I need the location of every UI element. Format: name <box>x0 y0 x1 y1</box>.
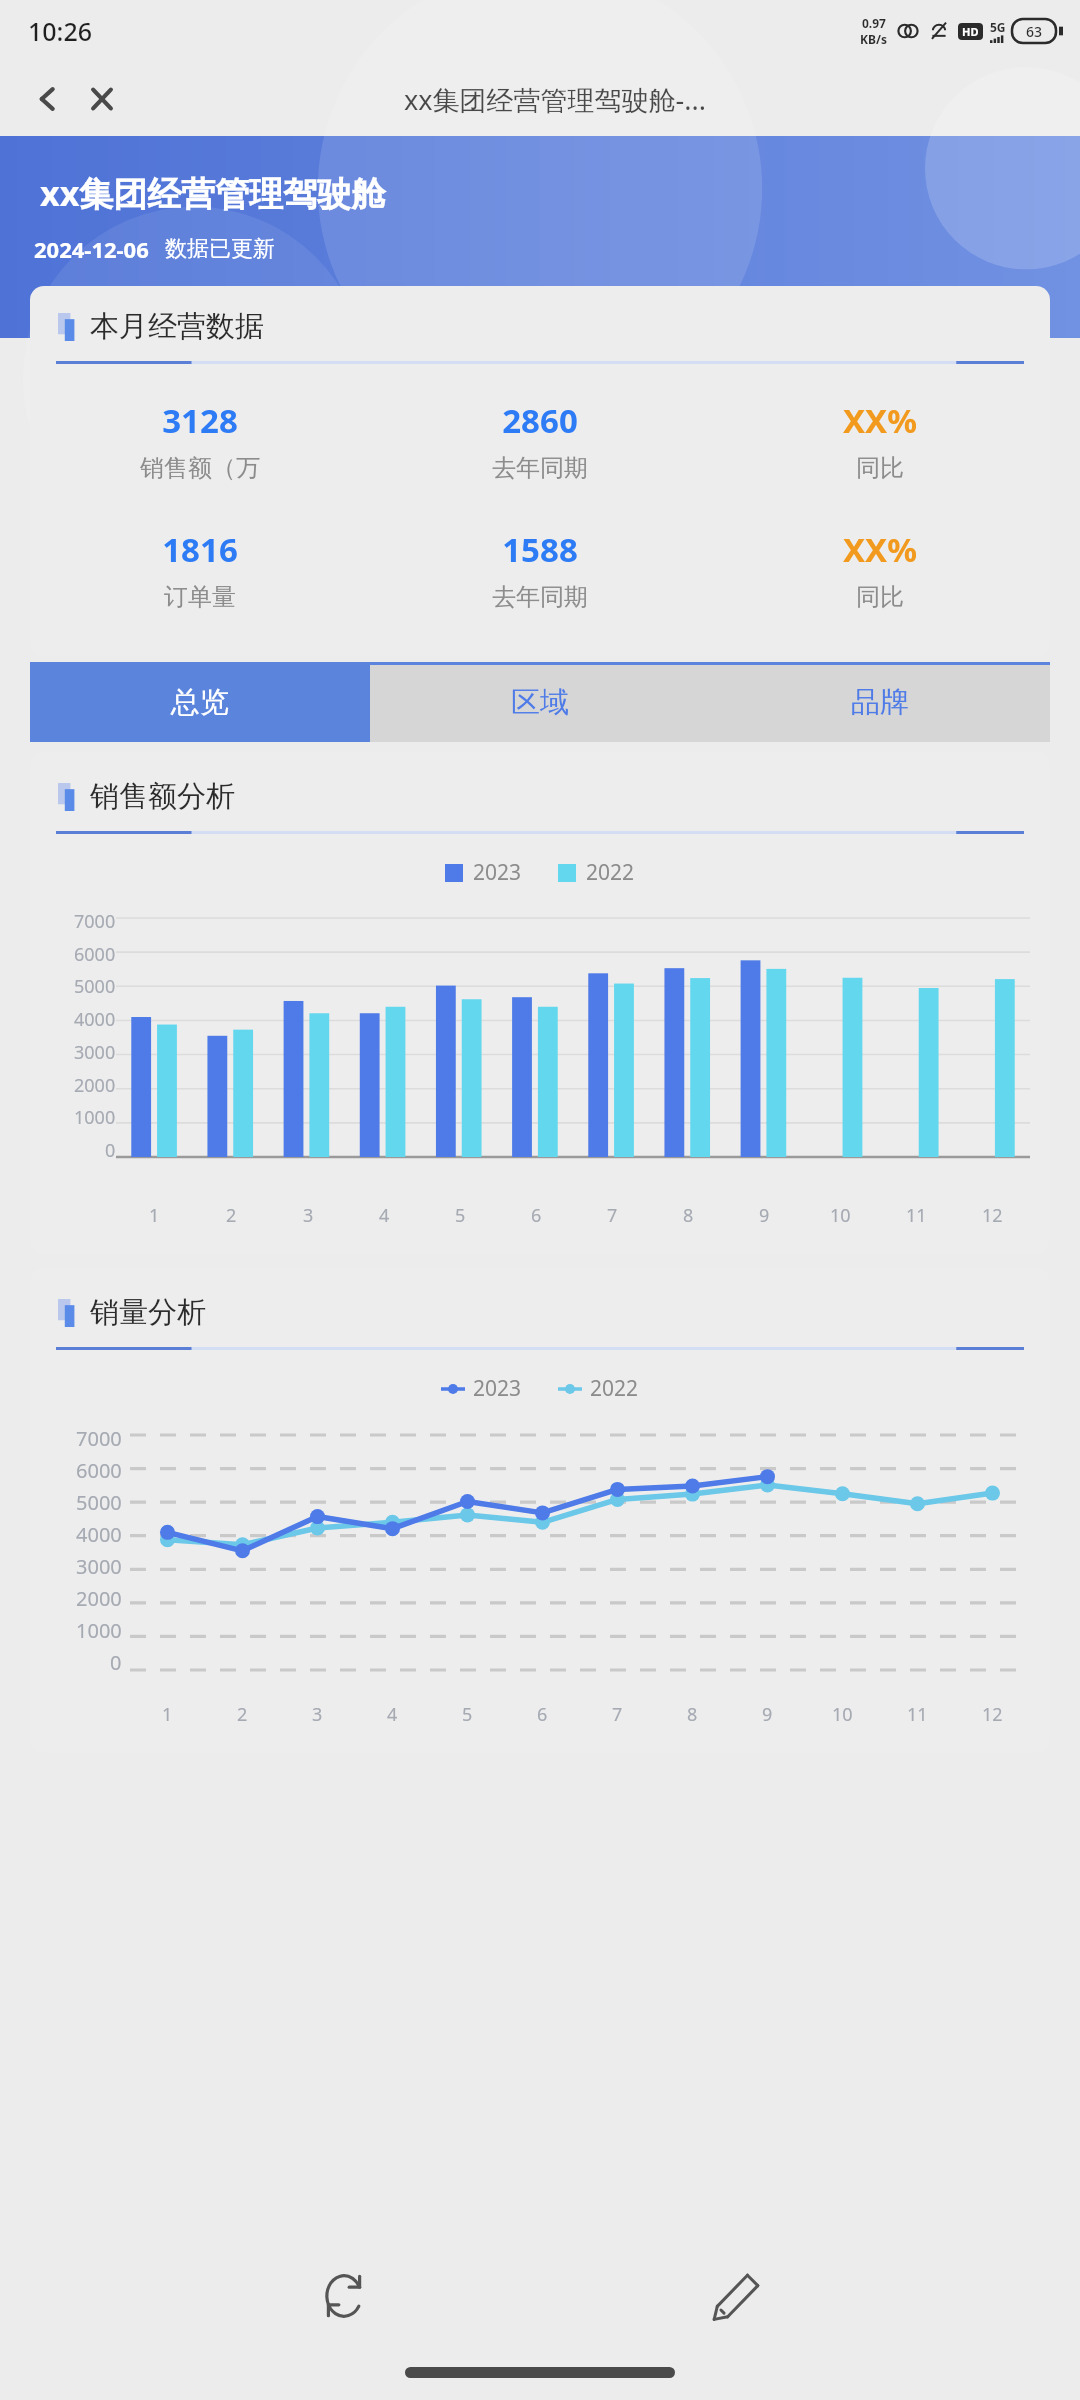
staticText: 9 <box>762 1702 773 1727</box>
staticText: 1 <box>149 1203 160 1228</box>
staticText: 10:26 <box>28 14 93 48</box>
staticText: 4000 <box>74 1007 116 1032</box>
staticText: 7000 <box>74 909 116 934</box>
staticText: 8 <box>687 1702 698 1727</box>
staticText: 4 <box>379 1203 390 1228</box>
staticText: 去年同期 <box>492 453 588 483</box>
staticText: 品牌 <box>851 684 909 721</box>
staticText: 2023 <box>473 858 522 887</box>
staticText: 7000 <box>76 1425 122 1452</box>
staticText: 订单量 <box>164 582 236 612</box>
staticText: 5000 <box>74 974 116 999</box>
staticText: 7 <box>607 1203 618 1228</box>
staticText: 0 <box>110 1649 122 1676</box>
button[interactable]: Back <box>24 75 72 123</box>
staticText: 11 <box>907 1702 928 1727</box>
staticText: 0.97 <box>862 15 886 31</box>
staticText: 4000 <box>76 1521 122 1548</box>
staticText: 9 <box>759 1203 770 1228</box>
staticText: 3 <box>303 1203 314 1228</box>
staticText: 5G <box>990 19 1006 35</box>
staticText: 去年同期 <box>492 582 588 612</box>
staticText: 2022 <box>586 858 635 887</box>
staticText: 1000 <box>76 1617 122 1644</box>
staticText: 4 <box>387 1702 398 1727</box>
staticText: 1 <box>162 1702 173 1727</box>
staticText: 2023 <box>473 1374 522 1403</box>
staticText: 2 <box>237 1702 248 1727</box>
staticText: 11 <box>906 1203 927 1228</box>
button[interactable]: Edit <box>688 2248 784 2344</box>
staticText: 5 <box>455 1203 466 1228</box>
staticText: HD <box>962 24 979 39</box>
staticText: 同比 <box>856 453 904 483</box>
staticText: 6000 <box>76 1457 122 1484</box>
staticText: 2000 <box>76 1585 122 1612</box>
staticText: 2000 <box>74 1073 116 1098</box>
staticText: 5 <box>462 1702 473 1727</box>
staticText: 2860 <box>502 398 578 443</box>
staticText: 1816 <box>162 527 238 572</box>
staticText: 0 <box>105 1138 116 1163</box>
button[interactable]: 总览 <box>30 662 370 742</box>
staticText: 10 <box>832 1702 853 1727</box>
staticText: XX% <box>843 398 917 443</box>
staticText: 3 <box>312 1702 323 1727</box>
staticText: 12 <box>982 1203 1003 1228</box>
staticText: 7 <box>612 1702 623 1727</box>
button[interactable]: Close <box>78 75 126 123</box>
staticText: 2024-12-06 <box>34 234 149 264</box>
staticText: xx集团经营管理驾驶舱 <box>40 170 386 216</box>
staticText: 2022 <box>590 1374 639 1403</box>
button[interactable]: 区域 <box>370 662 710 742</box>
staticText: 12 <box>982 1702 1003 1727</box>
staticText: 本月经营数据 <box>90 308 264 345</box>
staticText: 同比 <box>856 582 904 612</box>
staticText: 总览 <box>171 684 229 721</box>
staticText: 3128 <box>162 398 238 443</box>
staticText: 8 <box>683 1203 694 1228</box>
staticText: 2 <box>226 1203 237 1228</box>
button[interactable]: 品牌 <box>710 662 1050 742</box>
staticText: 1000 <box>74 1105 116 1130</box>
staticText: 销量分析 <box>90 1294 206 1331</box>
staticText: 区域 <box>511 684 569 721</box>
staticText: XX% <box>843 527 917 572</box>
button[interactable]: Refresh <box>296 2248 392 2344</box>
staticText: 3000 <box>74 1040 116 1065</box>
staticText: 数据已更新 <box>165 235 275 263</box>
staticText: 销售额分析 <box>90 778 235 815</box>
staticText: 10 <box>830 1203 851 1228</box>
staticText: 1588 <box>502 527 578 572</box>
staticText: 6 <box>537 1702 548 1727</box>
staticText: 3000 <box>76 1553 122 1580</box>
staticText: 6 <box>531 1203 542 1228</box>
staticText: 5000 <box>76 1489 122 1516</box>
staticText: 63 <box>1026 22 1043 41</box>
staticText: 销售额（万 <box>140 453 260 483</box>
staticText: xx集团经营管理驾驶舱-... <box>404 81 706 118</box>
staticText: KB/s <box>860 31 887 47</box>
staticText: 6000 <box>74 942 116 967</box>
